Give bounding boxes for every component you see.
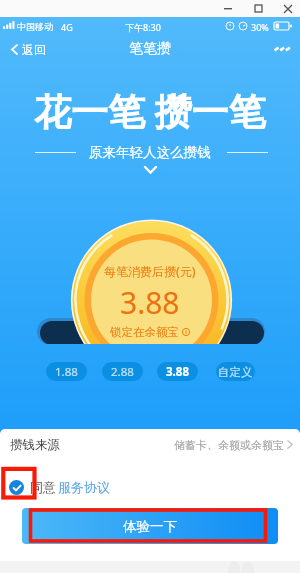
staticText: 储蓄卡、余额或余额宝 [174, 438, 284, 452]
staticText: 每笔消费后攒(元) [104, 263, 196, 279]
button[interactable]: 攒钱来源 [0, 431, 300, 458]
staticText: 30% [251, 21, 269, 33]
staticText: 锁定在余额宝 [110, 325, 179, 339]
button[interactable]: Maximize [248, 0, 268, 17]
staticText: 3.88 [120, 282, 180, 323]
button[interactable]: 体验一下 [22, 508, 278, 544]
button[interactable]: 自定义 [216, 362, 255, 381]
staticText: 服务协议 [58, 479, 110, 495]
button[interactable]: 2.88 [102, 362, 143, 381]
button[interactable]: More options [263, 38, 300, 60]
staticText: 自定义 [218, 365, 253, 379]
staticText: 中国移动 [17, 21, 53, 32]
staticText: 原来年轻人这么攒钱 [89, 144, 211, 161]
staticText: 返回 [22, 42, 46, 57]
staticText: 下午8:30 [125, 21, 161, 33]
staticText: 4G [61, 21, 73, 33]
staticText: 笔笔攒 [129, 40, 171, 58]
button[interactable]: 返回 [0, 38, 54, 61]
staticText: 1.88 [55, 364, 78, 380]
staticText: 花一笔 攒一笔 [34, 85, 266, 136]
button[interactable]: 1.88 [46, 362, 87, 381]
staticText: 同意 [30, 479, 56, 495]
button[interactable]: 3.88 [157, 362, 198, 381]
button[interactable]: Minimize [218, 0, 238, 17]
staticText: 3.88 [166, 364, 189, 380]
staticText: 2.88 [111, 364, 134, 380]
button[interactable]: 同意 [0, 474, 118, 500]
button[interactable]: Close [278, 0, 298, 17]
staticText: 攒钱来源 [10, 437, 60, 453]
staticText: 体验一下 [123, 518, 177, 535]
